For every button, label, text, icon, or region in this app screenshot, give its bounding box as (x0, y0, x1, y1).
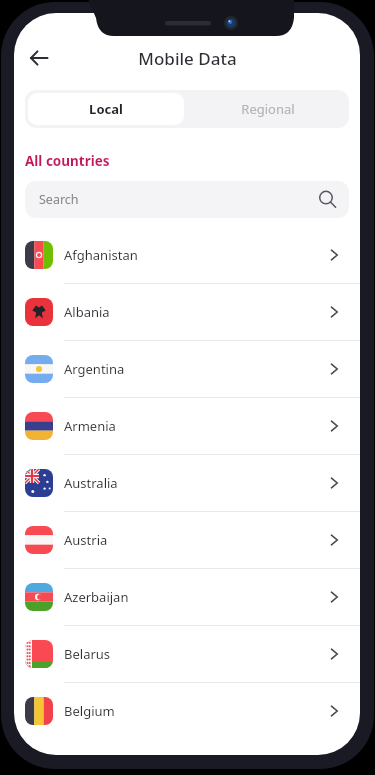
staticText: Local (89, 100, 123, 118)
button[interactable]: Armenia (14, 398, 360, 455)
button[interactable]: Back (20, 39, 58, 77)
staticText: Australia (64, 474, 326, 492)
staticText: Afghanistan (64, 246, 326, 264)
staticText: Austria (64, 531, 326, 549)
button[interactable]: Argentina (14, 341, 360, 398)
staticText: Armenia (64, 417, 326, 435)
staticText: All countries (25, 152, 110, 170)
button[interactable]: Regional (187, 90, 349, 128)
staticText: Regional (241, 100, 295, 118)
button[interactable]: Albania (14, 284, 360, 341)
button[interactable]: Belarus (14, 626, 360, 683)
button[interactable]: Afghanistan (14, 227, 360, 284)
staticText: Argentina (64, 360, 326, 378)
button[interactable]: Search (25, 181, 349, 218)
button[interactable]: Azerbaijan (14, 569, 360, 626)
staticText: Albania (64, 303, 326, 321)
button[interactable]: Australia (14, 455, 360, 512)
button[interactable]: Austria (14, 512, 360, 569)
staticText: Search (39, 191, 79, 208)
staticText: Azerbaijan (64, 588, 326, 606)
staticText: Belgium (64, 702, 326, 720)
staticText: Mobile Data (138, 47, 237, 70)
button[interactable]: Belgium (14, 683, 360, 739)
staticText: Belarus (64, 645, 326, 663)
button[interactable]: Local (28, 93, 184, 125)
